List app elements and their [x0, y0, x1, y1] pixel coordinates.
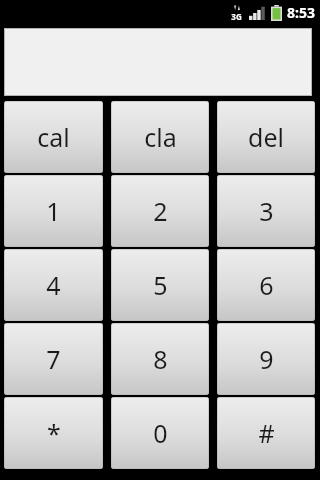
staticText: 9: [259, 342, 274, 376]
button[interactable]: *: [4, 397, 103, 469]
button[interactable]: 7: [4, 323, 103, 395]
button[interactable]: 1: [4, 175, 103, 247]
staticText: 3: [259, 194, 274, 228]
staticText: cal: [37, 120, 70, 154]
button[interactable]: 8: [111, 323, 209, 395]
button[interactable]: del: [217, 101, 315, 173]
staticText: del: [248, 120, 284, 154]
button[interactable]: cal: [4, 101, 103, 173]
button[interactable]: 4: [4, 249, 103, 321]
button[interactable]: 3: [217, 175, 315, 247]
button[interactable]: 6: [217, 249, 315, 321]
staticText: 1: [46, 194, 61, 228]
button[interactable]: 2: [111, 175, 209, 247]
button[interactable]: 9: [217, 323, 315, 395]
staticText: 5: [153, 268, 168, 302]
staticText: 6: [259, 268, 274, 302]
staticText: *: [47, 416, 61, 450]
staticText: 8: [153, 342, 168, 376]
button[interactable]: 5: [111, 249, 209, 321]
button[interactable]: #: [217, 397, 315, 469]
staticText: 0: [153, 416, 168, 450]
staticText: 3G: [231, 11, 242, 21]
staticText: cla: [144, 120, 177, 154]
staticText: #: [258, 416, 275, 450]
staticText: 2: [153, 194, 168, 228]
staticText: 4: [46, 268, 61, 302]
staticText: 8:53: [287, 3, 315, 22]
button[interactable]: [4, 28, 312, 96]
button[interactable]: cla: [111, 101, 209, 173]
staticText: 7: [46, 342, 61, 376]
button[interactable]: 0: [111, 397, 209, 469]
